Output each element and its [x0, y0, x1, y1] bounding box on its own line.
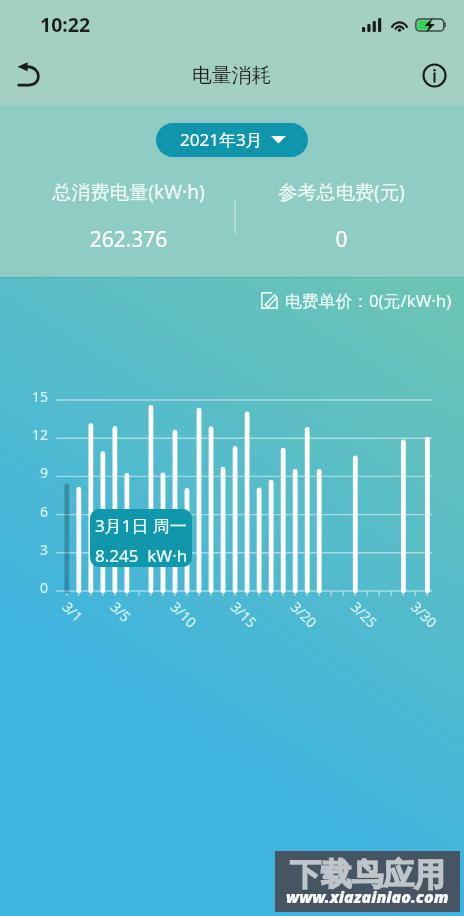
staticText: 0	[241, 225, 442, 254]
staticText: 2021年3月	[180, 128, 263, 151]
staticText: 电费单价：0(元/kW·h)	[285, 289, 452, 312]
button[interactable]: Info	[412, 53, 456, 97]
staticText: 8.245 kW·h	[95, 544, 188, 567]
staticText: 262.376	[28, 225, 229, 254]
staticText: 总消费电量(kW·h)	[28, 178, 229, 204]
button[interactable]: 电费单价：0(元/kW·h)	[260, 289, 452, 312]
staticText: 10:22	[40, 11, 91, 38]
button[interactable]: 3月1日 周一	[90, 509, 192, 567]
staticText: 参考总电费(元)	[241, 178, 442, 204]
button[interactable]: 2021年3月	[156, 123, 308, 157]
staticText: 电量消耗	[192, 63, 272, 88]
button[interactable]: Back	[6, 52, 52, 98]
staticText: www.xiazainiao.com	[286, 886, 449, 908]
staticText: 下载鸟应用	[290, 855, 445, 894]
staticText: 3月1日 周一	[95, 514, 187, 537]
